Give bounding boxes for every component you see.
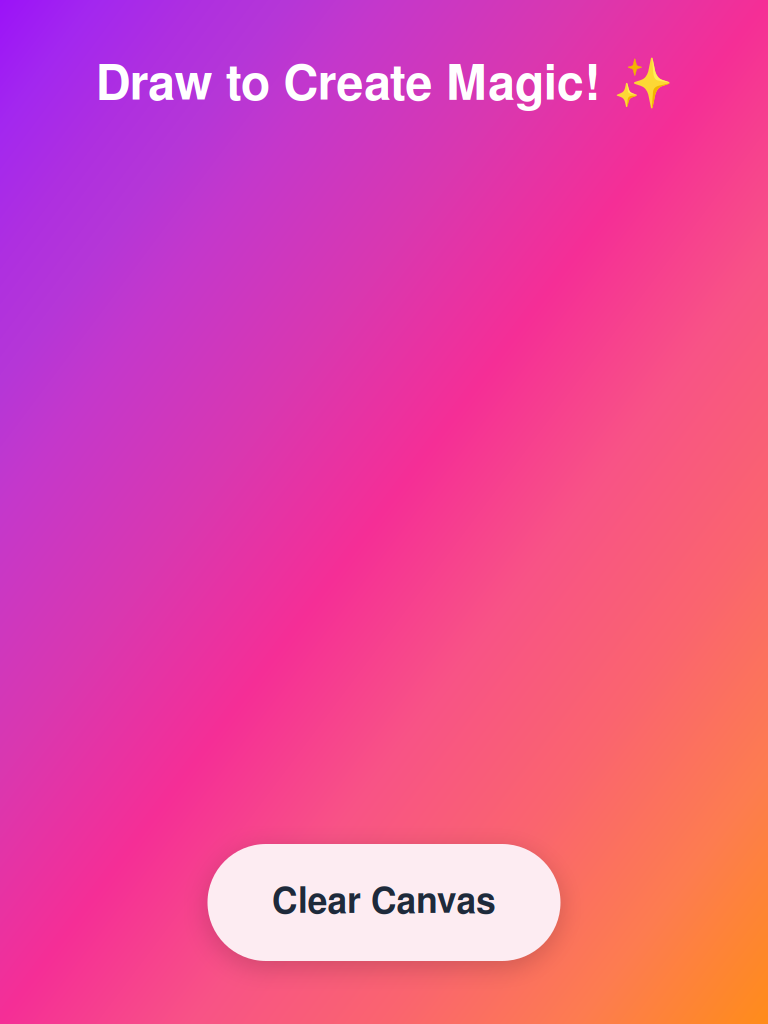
button[interactable]: Clear Canvas: [207, 844, 560, 961]
staticText: Clear Canvas: [272, 885, 496, 920]
staticText: Draw to Create Magic! ✨: [95, 55, 672, 112]
